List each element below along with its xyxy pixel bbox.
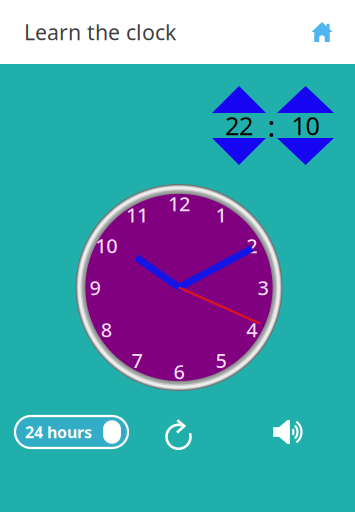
staticText: 11 [126,201,148,228]
staticText: 24 hours [25,421,92,443]
staticText: : [267,106,275,145]
staticText: 5 [215,347,226,374]
staticText: 9 [89,274,100,301]
staticText: Learn the clock [24,18,176,46]
staticText: 3 [257,274,268,301]
button[interactable]: Increase minutes [277,86,334,113]
button[interactable]: Speak the time [265,410,309,454]
button[interactable]: Decrease hours [212,138,266,165]
staticText: 1 [215,201,226,228]
button[interactable]: Increase hours [212,86,266,113]
staticText: 10 [95,232,117,259]
button[interactable]: Reset clock [157,410,201,454]
button[interactable]: 24 hours [15,416,128,448]
button[interactable]: Decrease minutes [277,138,334,165]
staticText: 8 [101,316,112,343]
staticText: 4 [246,316,257,343]
button[interactable]: Home [300,10,344,54]
staticText: 7 [131,347,142,374]
staticText: 12 [168,190,190,217]
staticText: 10 [291,109,319,142]
staticText: 6 [173,358,184,385]
staticText: 22 [225,109,253,142]
staticText: 2 [246,232,257,259]
